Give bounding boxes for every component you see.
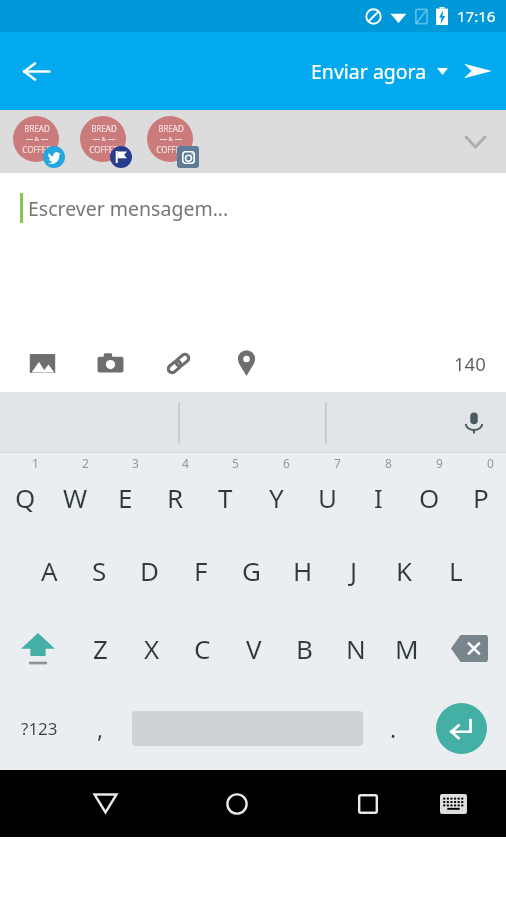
staticText: 3: [132, 455, 139, 471]
staticText: 6: [283, 455, 290, 471]
staticText: T: [218, 480, 233, 515]
staticText: N: [346, 631, 366, 666]
staticText: 1: [32, 455, 39, 471]
button[interactable]: V: [228, 609, 279, 687]
staticText: 17:16: [457, 6, 496, 26]
staticText: Z: [93, 631, 108, 666]
staticText: V: [246, 631, 262, 666]
staticText: G: [242, 553, 261, 588]
staticText: C: [194, 631, 211, 666]
staticText: M: [395, 631, 419, 666]
button[interactable]: J: [328, 531, 379, 609]
button[interactable]: 8: [353, 453, 404, 531]
button[interactable]: Send: [454, 47, 502, 95]
button[interactable]: X: [126, 609, 177, 687]
button[interactable]: Backspace: [432, 609, 506, 687]
button[interactable]: S: [74, 531, 124, 609]
staticText: H: [293, 553, 313, 588]
staticText: O: [419, 480, 440, 515]
button[interactable]: 6: [251, 453, 302, 531]
staticText: 8: [385, 455, 392, 471]
button[interactable]: ,: [78, 687, 123, 770]
button[interactable]: C: [177, 609, 228, 687]
staticText: ?123: [21, 717, 58, 740]
staticText: COFFEE: [156, 144, 185, 155]
staticText: U: [318, 480, 338, 515]
staticText: E: [118, 480, 133, 515]
button[interactable]: Switch keyboard: [416, 770, 491, 837]
staticText: COFFEE: [89, 144, 118, 155]
button[interactable]: 4: [150, 453, 200, 531]
staticText: 7: [334, 455, 341, 471]
staticText: COFFEE: [22, 144, 51, 155]
staticText: A: [41, 553, 58, 588]
staticText: Y: [269, 480, 284, 515]
button[interactable]: Account: [13, 116, 65, 168]
staticText: ,: [97, 713, 104, 744]
button[interactable]: H: [277, 531, 328, 609]
button[interactable]: Enter: [416, 687, 506, 770]
button[interactable]: Back: [68, 770, 143, 837]
button[interactable]: B: [279, 609, 330, 687]
button[interactable]: Enviar agora: [305, 48, 454, 95]
button[interactable]: Account: [147, 116, 199, 168]
staticText: BREAD: [24, 123, 50, 134]
button[interactable]: Account: [80, 116, 132, 168]
staticText: 2: [82, 455, 89, 471]
staticText: 5: [232, 455, 239, 471]
staticText: F: [194, 553, 208, 588]
staticText: 0: [487, 455, 494, 471]
button[interactable]: Add location: [212, 335, 280, 391]
staticText: &: [100, 135, 108, 143]
staticText: L: [449, 553, 463, 588]
staticText: &: [33, 135, 41, 143]
button[interactable]: 1: [0, 453, 50, 531]
button[interactable]: 9: [404, 453, 455, 531]
staticText: B: [296, 631, 313, 666]
button[interactable]: Add image: [8, 335, 76, 391]
staticText: D: [140, 553, 159, 588]
button[interactable]: Expand accounts: [452, 119, 498, 165]
button[interactable]: G: [226, 531, 277, 609]
button[interactable]: 3: [100, 453, 150, 531]
button[interactable]: Home: [199, 770, 274, 837]
button[interactable]: Add link: [144, 335, 212, 391]
staticText: .: [390, 713, 397, 744]
button[interactable]: M: [381, 609, 432, 687]
button[interactable]: A: [24, 531, 74, 609]
button[interactable]: Space: [123, 687, 371, 770]
button[interactable]: 5: [200, 453, 251, 531]
button[interactable]: L: [430, 531, 481, 609]
staticText: J: [350, 553, 358, 588]
button[interactable]: K: [379, 531, 430, 609]
staticText: BREAD: [91, 123, 117, 134]
button[interactable]: Recent apps: [330, 770, 405, 837]
button[interactable]: Voice input: [452, 401, 496, 445]
staticText: K: [396, 553, 413, 588]
button[interactable]: D: [124, 531, 175, 609]
button[interactable]: ?123: [0, 687, 78, 770]
staticText: BREAD: [158, 123, 184, 134]
staticText: 140: [454, 351, 486, 376]
button[interactable]: Shift: [0, 609, 75, 687]
button[interactable]: Z: [75, 609, 126, 687]
staticText: Enviar agora: [311, 58, 427, 85]
button[interactable]: 0: [455, 453, 506, 531]
button[interactable]: Take photo: [76, 335, 144, 391]
staticText: R: [167, 480, 184, 515]
staticText: W: [63, 480, 88, 515]
staticText: S: [92, 553, 107, 588]
button[interactable]: 2: [50, 453, 100, 531]
button[interactable]: Escrever mensagem...: [0, 173, 506, 333]
staticText: I: [374, 480, 383, 515]
button[interactable]: .: [371, 687, 416, 770]
staticText: 4: [182, 455, 189, 471]
staticText: 9: [436, 455, 443, 471]
button[interactable]: F: [175, 531, 226, 609]
staticText: Escrever mensagem...: [28, 195, 229, 222]
button[interactable]: N: [330, 609, 381, 687]
button[interactable]: Back: [10, 45, 62, 97]
staticText: Q: [15, 480, 36, 515]
button[interactable]: 7: [302, 453, 353, 531]
staticText: X: [144, 631, 160, 666]
